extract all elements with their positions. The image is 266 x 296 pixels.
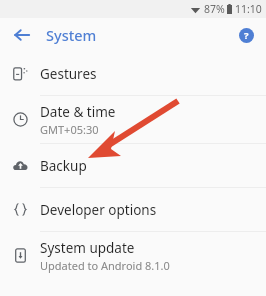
- button[interactable]: Developer options: [0, 188, 266, 231]
- button[interactable]: Back: [8, 21, 36, 49]
- staticText: Date & time: [40, 103, 116, 121]
- staticText: Updated to Android 8.1.0: [40, 258, 170, 273]
- staticText: System update: [40, 239, 135, 257]
- staticText: Gestures: [40, 65, 97, 83]
- staticText: ?: [244, 29, 249, 42]
- button[interactable]: System update: [0, 232, 266, 279]
- staticText: Backup: [40, 157, 87, 175]
- staticText: 11:10: [235, 2, 262, 16]
- staticText: 87%: [204, 2, 225, 16]
- button[interactable]: Help: [233, 22, 259, 48]
- button[interactable]: Date & time: [0, 96, 266, 143]
- button[interactable]: Backup: [0, 144, 266, 187]
- staticText: System: [46, 25, 97, 45]
- staticText: GMT+05:30: [40, 122, 99, 137]
- button[interactable]: Gestures: [0, 52, 266, 95]
- staticText: Developer options: [40, 201, 157, 219]
